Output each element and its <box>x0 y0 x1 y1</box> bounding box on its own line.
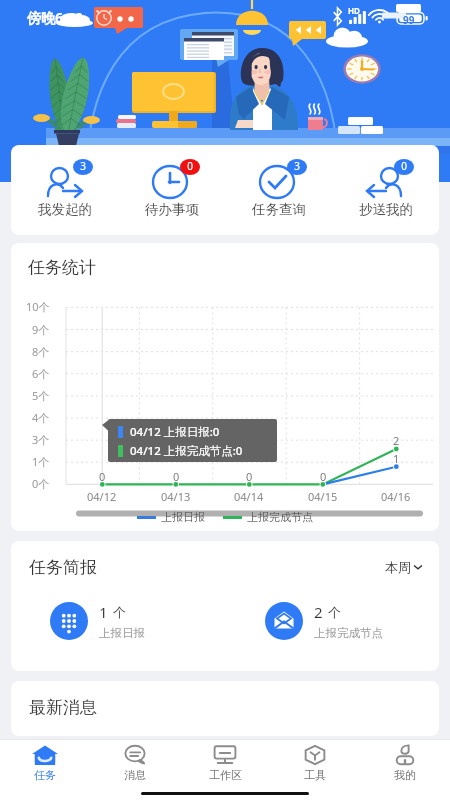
staticText: 0 <box>394 159 414 173</box>
button[interactable]: 工作区 <box>180 740 270 786</box>
staticText: 最新消息 <box>29 697 97 718</box>
staticText: 0 <box>246 469 253 484</box>
staticText: 3 <box>73 159 93 173</box>
staticText: 0 <box>180 159 200 173</box>
staticText: 2 <box>314 602 323 622</box>
button[interactable]: 工具 <box>270 740 360 786</box>
staticText: 10个 <box>26 299 50 314</box>
button[interactable]: 消息 <box>90 740 180 786</box>
staticText: 04/13 <box>161 489 191 504</box>
staticText: 本周 <box>385 559 411 575</box>
staticText: 1 <box>99 602 108 622</box>
button[interactable]: 我的 <box>360 740 450 786</box>
staticText: 99 <box>403 13 415 27</box>
staticText: 上报日报 <box>99 626 145 640</box>
staticText: 3 <box>287 159 307 173</box>
staticText: 任务 <box>34 768 56 782</box>
button[interactable]: 本周 <box>385 559 423 575</box>
button[interactable]: 0 <box>332 145 439 235</box>
staticText: 我发起的 <box>38 201 92 218</box>
staticText: 04/12 上报日报:0 <box>130 424 220 440</box>
staticText: 待办事项 <box>145 201 199 218</box>
staticText: 0个 <box>32 476 50 491</box>
staticText: 8个 <box>32 344 50 359</box>
staticText: 1 <box>393 451 400 466</box>
staticText: 上报完成节点 <box>314 626 383 640</box>
staticText: 上报日报 <box>161 510 205 524</box>
staticText: 04/12 <box>87 489 117 504</box>
button[interactable]: 1 <box>50 602 145 640</box>
staticText: 2 <box>393 433 400 448</box>
staticText: 9个 <box>32 322 50 337</box>
button[interactable]: 任务 <box>0 740 90 786</box>
button[interactable]: 2 <box>265 602 383 640</box>
staticText: 上报完成节点 <box>247 510 313 524</box>
staticText: 3个 <box>32 432 50 447</box>
staticText: HD <box>348 5 360 16</box>
staticText: 任务查询 <box>252 201 306 218</box>
staticText: 04/12 上报完成节点:0 <box>130 443 243 459</box>
staticText: 工作区 <box>209 768 242 782</box>
button[interactable]: 0 <box>118 145 225 235</box>
staticText: 0 <box>173 469 180 484</box>
staticText: 工具 <box>304 768 326 782</box>
staticText: 4个 <box>32 410 50 425</box>
staticText: 消息 <box>124 768 146 782</box>
staticText: 0 <box>99 469 106 484</box>
staticText: 个 <box>113 604 126 620</box>
staticText: 我的 <box>394 768 416 782</box>
staticText: 04/15 <box>308 489 338 504</box>
staticText: 个 <box>328 604 341 620</box>
button[interactable]: 3 <box>225 145 332 235</box>
staticText: 04/14 <box>234 489 264 504</box>
staticText: 5个 <box>32 388 50 403</box>
staticText: 任务简报 <box>29 557 97 578</box>
staticText: 6个 <box>32 366 50 381</box>
staticText: 抄送我的 <box>359 201 413 218</box>
button[interactable]: 3 <box>11 145 118 235</box>
staticText: 0 <box>320 469 327 484</box>
staticText: 任务统计 <box>28 257 96 278</box>
staticText: 1个 <box>32 454 50 469</box>
staticText: 04/16 <box>381 489 411 504</box>
staticText: 傍晚6:40 <box>27 8 83 27</box>
